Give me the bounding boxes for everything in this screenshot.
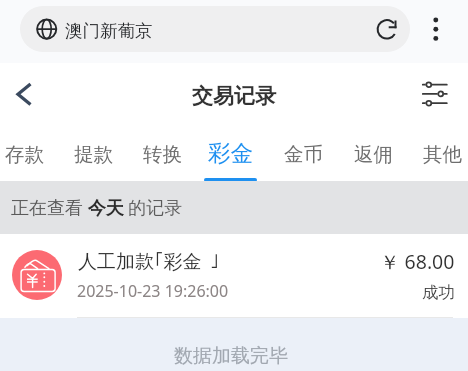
staticText: ｣ bbox=[210, 250, 220, 269]
staticText: 其他 bbox=[423, 142, 462, 167]
button[interactable]: 转换 bbox=[134, 128, 190, 181]
button[interactable]: 提款 bbox=[65, 128, 121, 181]
button[interactable]: 存款 bbox=[0, 128, 52, 181]
staticText: 人工加款｢彩金 bbox=[78, 250, 202, 274]
staticText: ￥ 68.00 bbox=[380, 248, 455, 275]
button[interactable]: 返佣 bbox=[345, 128, 401, 181]
staticText: 存款 bbox=[5, 142, 44, 167]
button[interactable]: 澳门新葡京 bbox=[20, 6, 410, 52]
staticText: 正在查看 今天 的记录 bbox=[11, 195, 183, 220]
button[interactable]: Back bbox=[10, 79, 40, 109]
button[interactable]: 金币 bbox=[275, 128, 331, 181]
button[interactable]: More options bbox=[422, 10, 450, 44]
button[interactable]: Reload bbox=[372, 14, 406, 48]
staticText: 2025-10-23 19:26:00 bbox=[77, 280, 229, 302]
staticText: 数据加载完毕 bbox=[174, 344, 288, 368]
button[interactable]: 人工加款｢彩金 bbox=[0, 234, 468, 318]
button[interactable]: 其他 bbox=[414, 128, 468, 181]
staticText: 澳门新葡京 bbox=[65, 20, 153, 42]
staticText: 转换 bbox=[143, 142, 182, 167]
staticText: 金币 bbox=[284, 142, 323, 167]
staticText: 交易记录 bbox=[192, 83, 276, 109]
button[interactable]: Filter bbox=[418, 80, 452, 108]
staticText: 成功 bbox=[422, 282, 455, 303]
staticText: 返佣 bbox=[354, 142, 393, 167]
button[interactable]: 彩金 bbox=[202, 128, 258, 181]
staticText: 提款 bbox=[74, 142, 113, 167]
staticText: 彩金 bbox=[208, 139, 253, 167]
